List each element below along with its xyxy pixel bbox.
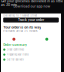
staticText: Get your groceries delivered in as littl… bbox=[1, 0, 63, 7]
staticText: Out for delivery bbox=[7, 58, 24, 61]
staticText: Estimated arrival 25 minutes bbox=[3, 30, 37, 33]
button[interactable]: Track your order bbox=[3, 17, 59, 22]
staticText: Download our app now bbox=[13, 4, 50, 8]
staticText: Delivering to 1 Market Street bbox=[3, 14, 37, 17]
staticText: Order summary bbox=[3, 43, 27, 47]
staticText: Preparing your items bbox=[7, 53, 29, 56]
staticText: Order confirmed bbox=[7, 48, 24, 51]
staticText: Track your order bbox=[18, 18, 44, 22]
staticText: Your order is on its way bbox=[3, 25, 41, 29]
